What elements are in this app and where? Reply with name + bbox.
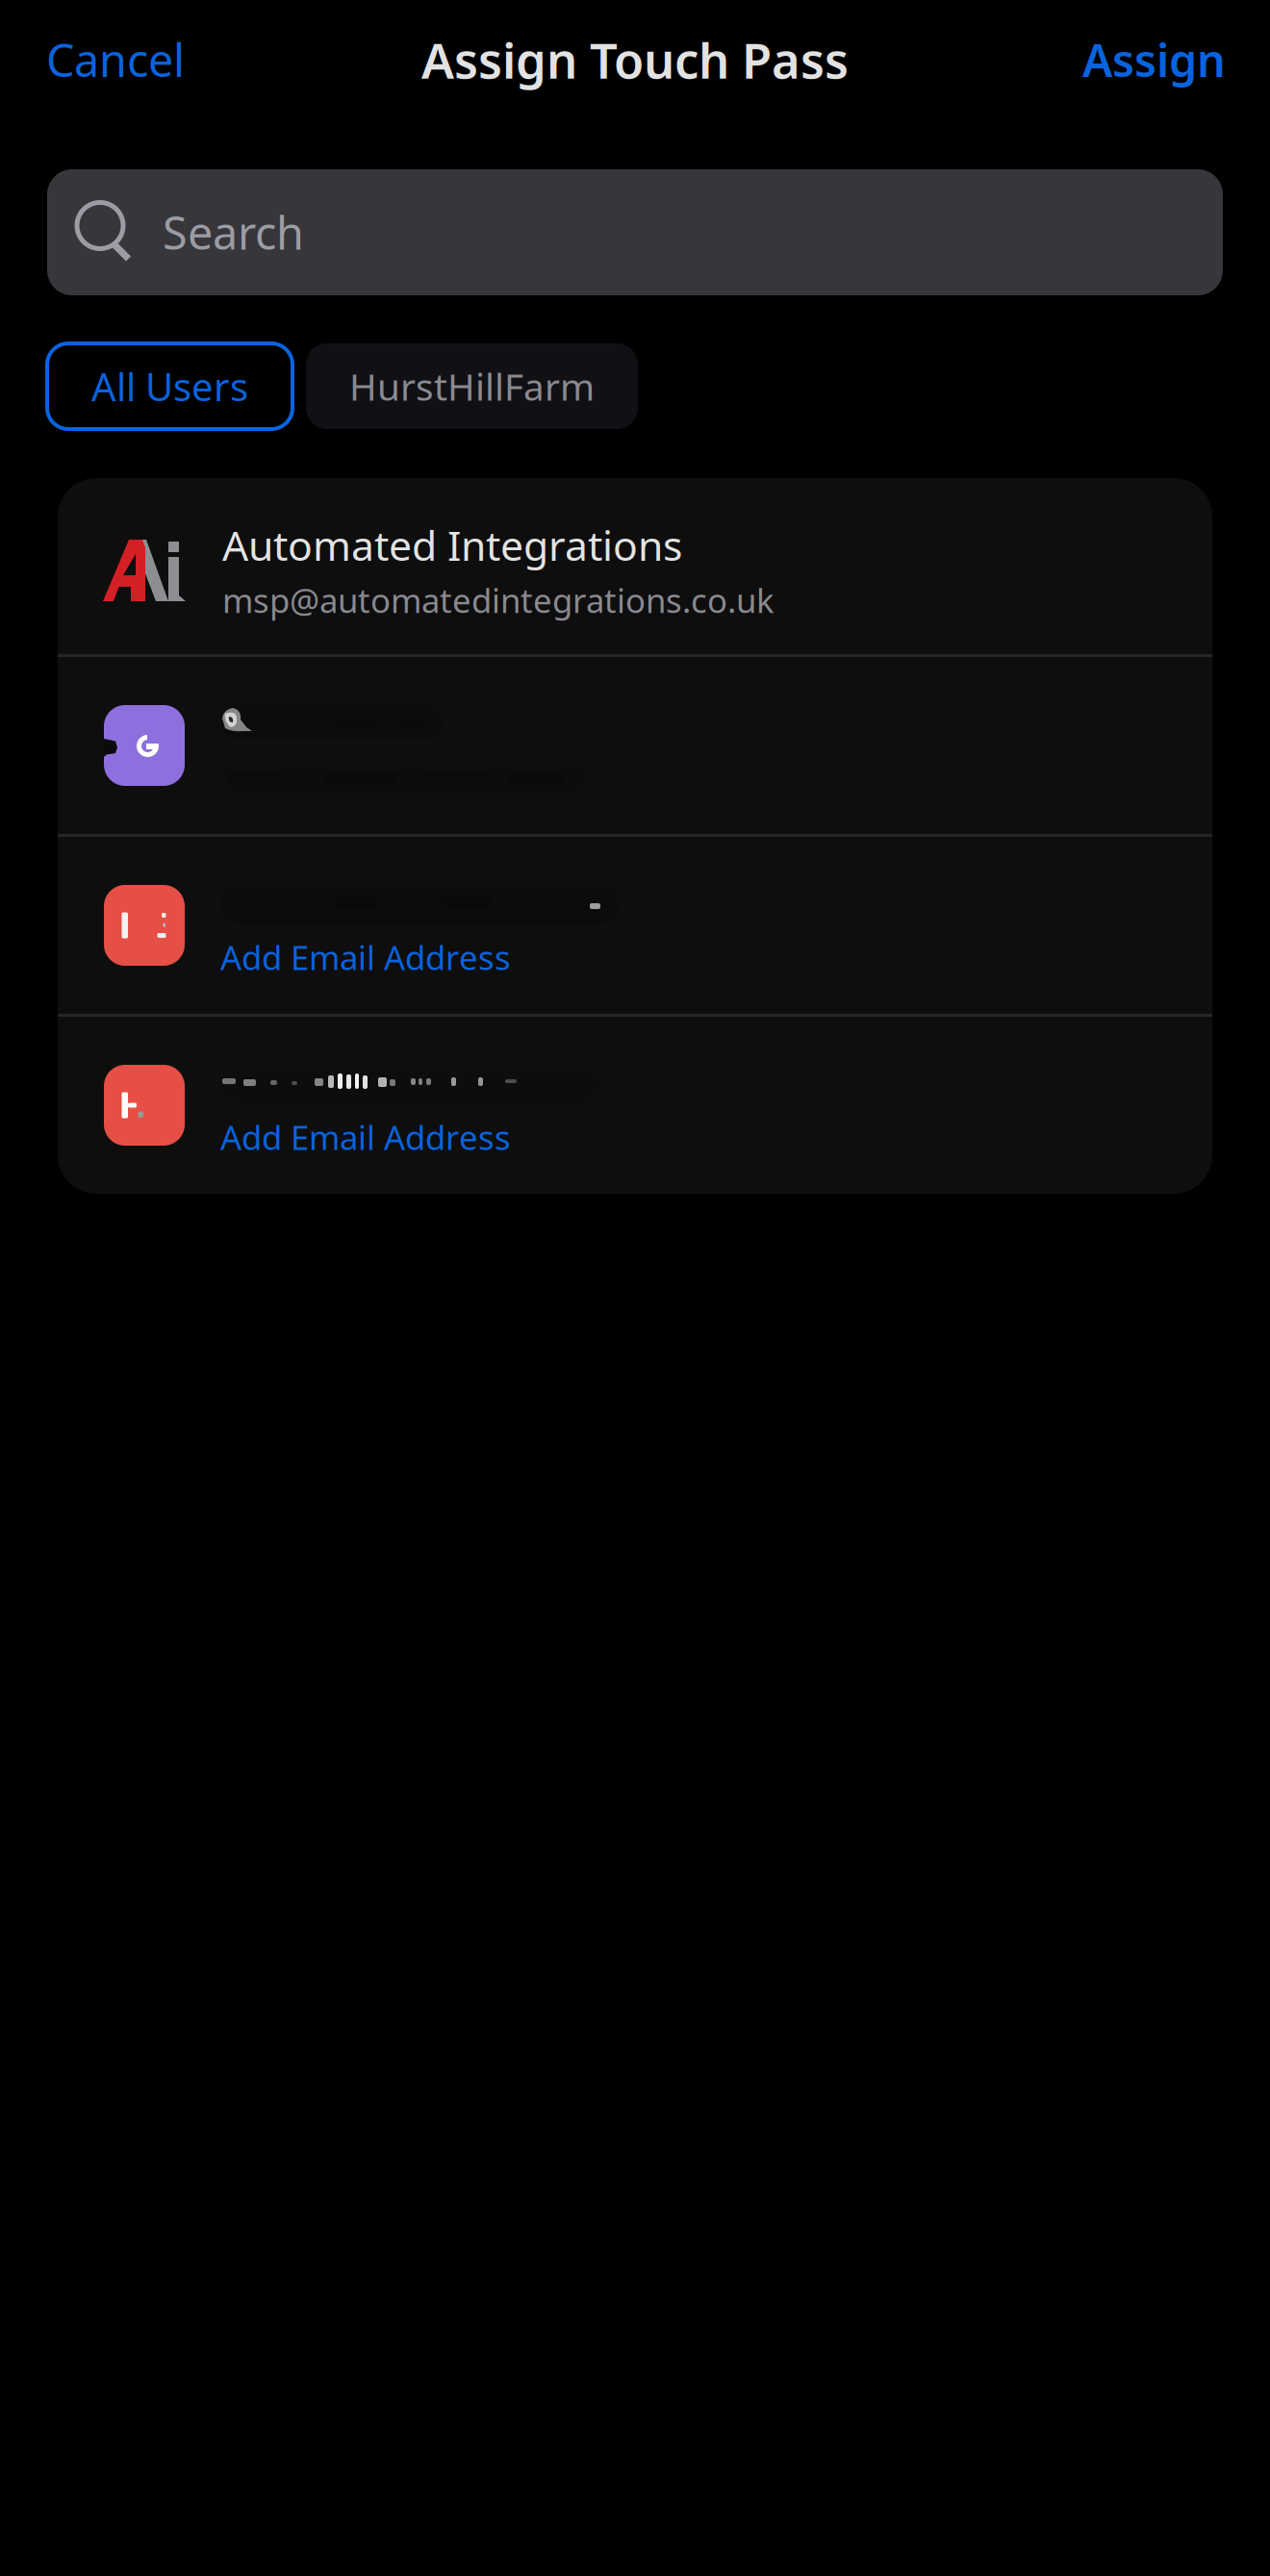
button[interactable]: Search [47,169,1223,295]
button[interactable]: Assign [1057,9,1226,111]
button[interactable]: Automated Integrations [58,478,1212,654]
button[interactable]: Add Email Address [58,837,1212,1014]
staticText: HurstHillFarm [349,361,595,411]
button[interactable]: Cancel [46,9,210,111]
staticText: All Users [91,361,248,412]
staticText: Add Email Address [220,1115,511,1159]
staticText: msp@automatedintegrations.co.uk [222,578,775,622]
button[interactable]: Add Email Address [58,1017,1212,1194]
staticText: Assign Touch Pass [421,27,849,92]
button[interactable] [58,657,1212,834]
button[interactable]: All Users [47,343,292,429]
staticText: Search [163,202,304,262]
staticText: Cancel [46,30,185,89]
staticText: Assign [1082,30,1226,89]
staticText: Add Email Address [220,935,511,979]
button[interactable]: HurstHillFarm [306,343,638,429]
staticText: Automated Integrations [222,518,682,572]
